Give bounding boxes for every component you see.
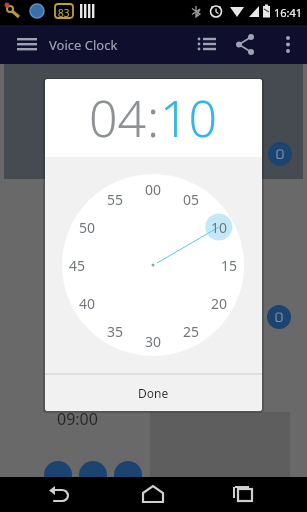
button[interactable]: 05 — [178, 190, 204, 208]
button[interactable]: 00 — [140, 180, 166, 198]
staticText: 45 — [69, 256, 86, 274]
staticText: 05 — [183, 190, 200, 208]
staticText: 25 — [183, 322, 200, 340]
staticText: 40 — [79, 294, 96, 312]
button[interactable] — [36, 477, 86, 512]
staticText: : — [147, 84, 160, 152]
button[interactable]: 15 — [216, 256, 242, 274]
staticText: 15 — [221, 256, 238, 274]
button[interactable]: 30 — [140, 332, 166, 350]
staticText: 00 — [145, 180, 162, 198]
staticText: 16:41 — [274, 5, 303, 20]
staticText: 20 — [211, 294, 228, 312]
button[interactable]: 20 — [206, 294, 232, 312]
button[interactable] — [277, 25, 307, 64]
staticText: Voice Clock — [49, 36, 118, 54]
button[interactable]: Done — [45, 375, 262, 411]
staticText: 10 — [211, 218, 228, 236]
button[interactable]: 10 — [206, 218, 232, 236]
staticText: 10 — [160, 84, 218, 152]
button[interactable] — [128, 477, 178, 512]
button[interactable]: 55 — [102, 190, 128, 208]
button[interactable] — [231, 25, 261, 64]
button[interactable]: 40 — [74, 294, 100, 312]
button[interactable] — [218, 477, 268, 512]
button[interactable]: 50 — [74, 218, 100, 236]
staticText: 09:00 — [57, 408, 98, 430]
button[interactable]: 45 — [64, 256, 90, 274]
staticText: 50 — [79, 218, 96, 236]
button[interactable] — [267, 305, 291, 329]
button[interactable] — [0, 25, 44, 64]
button[interactable] — [268, 142, 292, 166]
button[interactable]: 25 — [178, 322, 204, 340]
staticText: 04 — [89, 84, 147, 152]
staticText: 35 — [107, 322, 124, 340]
staticText: 55 — [107, 190, 124, 208]
staticText: 30 — [145, 332, 162, 350]
staticText: Done — [138, 385, 169, 401]
button[interactable]: 35 — [102, 322, 128, 340]
staticText: 83 — [58, 6, 70, 20]
button[interactable] — [192, 25, 222, 64]
